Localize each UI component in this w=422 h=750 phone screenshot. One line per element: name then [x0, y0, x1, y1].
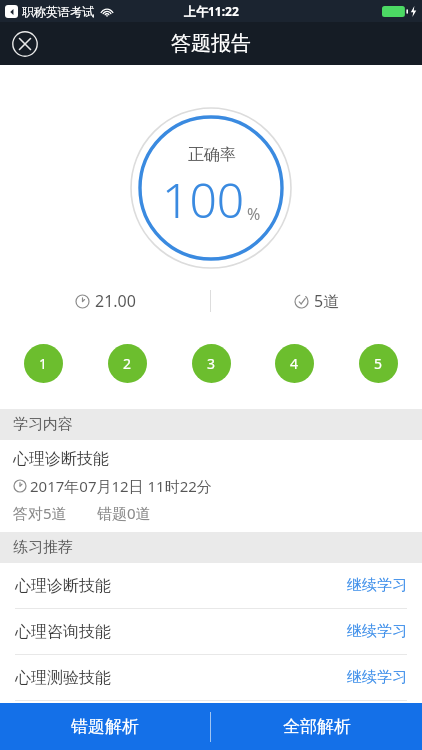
staticText: 100 — [162, 167, 245, 232]
staticText: 学习内容 — [13, 415, 73, 434]
staticText: 2017年07月12日 11时22分 — [30, 476, 212, 496]
button[interactable]: 4 — [275, 344, 314, 383]
staticText: 练习推荐 — [13, 538, 73, 557]
staticText: 21.00 — [95, 290, 136, 312]
staticText: 继续学习 — [347, 576, 407, 595]
staticText: 心理诊断技能 — [15, 576, 111, 596]
staticText: 继续学习 — [347, 622, 407, 641]
button[interactable]: 1 — [24, 344, 63, 383]
staticText: 2 — [123, 354, 132, 373]
staticText: 3 — [207, 354, 216, 373]
staticText: % — [247, 203, 261, 225]
button[interactable]: 错题解析 — [0, 703, 210, 750]
staticText: 5道 — [314, 290, 340, 312]
staticText: 答对5道 — [13, 503, 67, 523]
button[interactable]: 心理测验技能 — [0, 655, 422, 700]
button[interactable]: 3 — [192, 344, 231, 383]
staticText: 1 — [39, 354, 48, 373]
staticText: 上午11:22 — [184, 3, 239, 19]
staticText: 错题解析 — [71, 716, 139, 737]
staticText: 4 — [290, 354, 299, 373]
button[interactable]: 心理诊断技能 — [0, 563, 422, 608]
button[interactable]: 全部解析 — [211, 703, 422, 750]
staticText: 心理咨询技能 — [15, 622, 111, 642]
staticText: 心理测验技能 — [15, 668, 111, 688]
staticText: 心理诊断技能 — [13, 449, 109, 469]
button[interactable]: Close — [8, 27, 42, 61]
staticText: 正确率 — [188, 145, 236, 165]
staticText: 继续学习 — [347, 668, 407, 687]
staticText: 5 — [374, 354, 383, 373]
staticText: 全部解析 — [283, 716, 351, 737]
staticText: 答题报告 — [171, 31, 251, 56]
staticText: 错题0道 — [97, 503, 151, 523]
button[interactable]: 心理咨询技能 — [0, 609, 422, 654]
button[interactable]: 2 — [108, 344, 147, 383]
staticText: 职称英语考试 — [22, 4, 94, 19]
button[interactable]: 5 — [359, 344, 398, 383]
